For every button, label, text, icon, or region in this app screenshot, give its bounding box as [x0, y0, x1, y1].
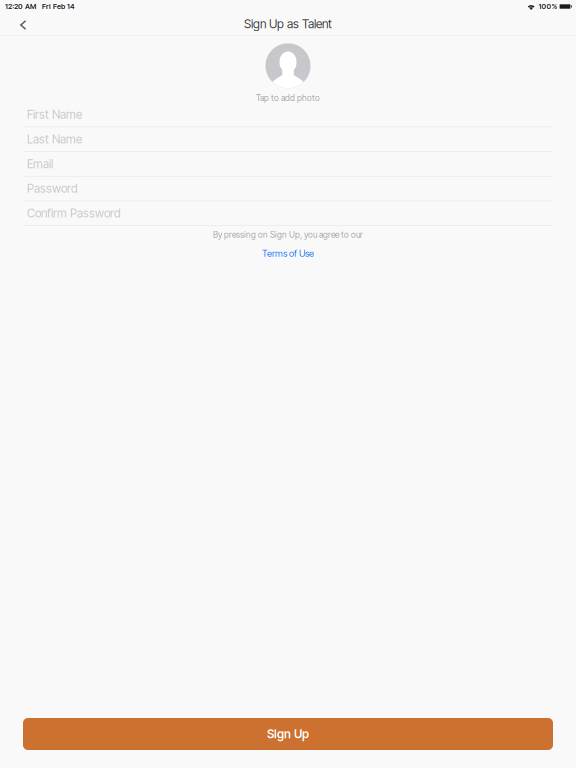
staticText: Last Name — [27, 132, 82, 146]
button[interactable]: Last Name — [0, 127, 576, 152]
button[interactable]: Sign Up — [23, 718, 553, 750]
staticText: Email — [27, 157, 53, 171]
staticText: Password — [27, 181, 78, 196]
staticText: 100% — [538, 2, 557, 11]
staticText: Confirm Password — [27, 206, 121, 220]
staticText: Sign Up — [267, 727, 309, 741]
button[interactable]: Terms of Use — [252, 240, 324, 263]
button[interactable]: Back — [0, 13, 40, 35]
button[interactable]: First Name — [0, 102, 576, 127]
staticText: 12:20 AM — [5, 2, 36, 11]
staticText: Terms of Use — [262, 248, 314, 259]
button[interactable]: Email — [0, 152, 576, 177]
button[interactable]: Password — [0, 177, 576, 201]
staticText: Fri Feb 14 — [42, 2, 75, 11]
button[interactable]: Tap to add photo — [216, 35, 360, 102]
staticText: Tap to add photo — [256, 93, 320, 103]
staticText: Sign Up as Talent — [244, 17, 332, 31]
button[interactable]: Confirm Password — [0, 201, 576, 226]
staticText: First Name — [27, 107, 82, 122]
staticText: By pressing on Sign Up, you agree to our — [213, 229, 363, 240]
